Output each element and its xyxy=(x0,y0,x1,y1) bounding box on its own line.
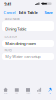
staticText: Home xyxy=(4,92,8,94)
staticText: LOCATION xyxy=(4,35,17,38)
button[interactable]: Me xyxy=(45,87,56,98)
button[interactable]: Cancel xyxy=(3,8,17,16)
staticText: Cancel xyxy=(4,10,16,15)
staticText: Tables xyxy=(25,92,30,94)
staticText: NOTES xyxy=(4,48,11,52)
staticText: Me xyxy=(49,92,51,94)
button[interactable]: Home xyxy=(0,87,11,98)
button[interactable]: Plan xyxy=(11,87,22,98)
staticText: Save xyxy=(44,10,52,15)
button[interactable]: Save xyxy=(43,8,53,16)
button[interactable]: Main dining room xyxy=(0,0,56,100)
button[interactable]: My Water can setup xyxy=(0,0,56,100)
staticText: Dining Table xyxy=(5,26,26,31)
button[interactable]: Stats xyxy=(34,87,45,98)
staticText: Main dining room xyxy=(5,41,36,46)
staticText: Stats xyxy=(38,92,41,94)
staticText: Plan xyxy=(15,92,18,94)
staticText: 9:41 xyxy=(4,1,11,7)
staticText: TABLE NAME xyxy=(4,17,19,21)
staticText: Edit Table xyxy=(18,10,37,15)
staticText: My Water can setup xyxy=(5,54,40,59)
button[interactable]: Dining Table xyxy=(0,0,56,100)
button[interactable]: Tables xyxy=(22,87,34,98)
